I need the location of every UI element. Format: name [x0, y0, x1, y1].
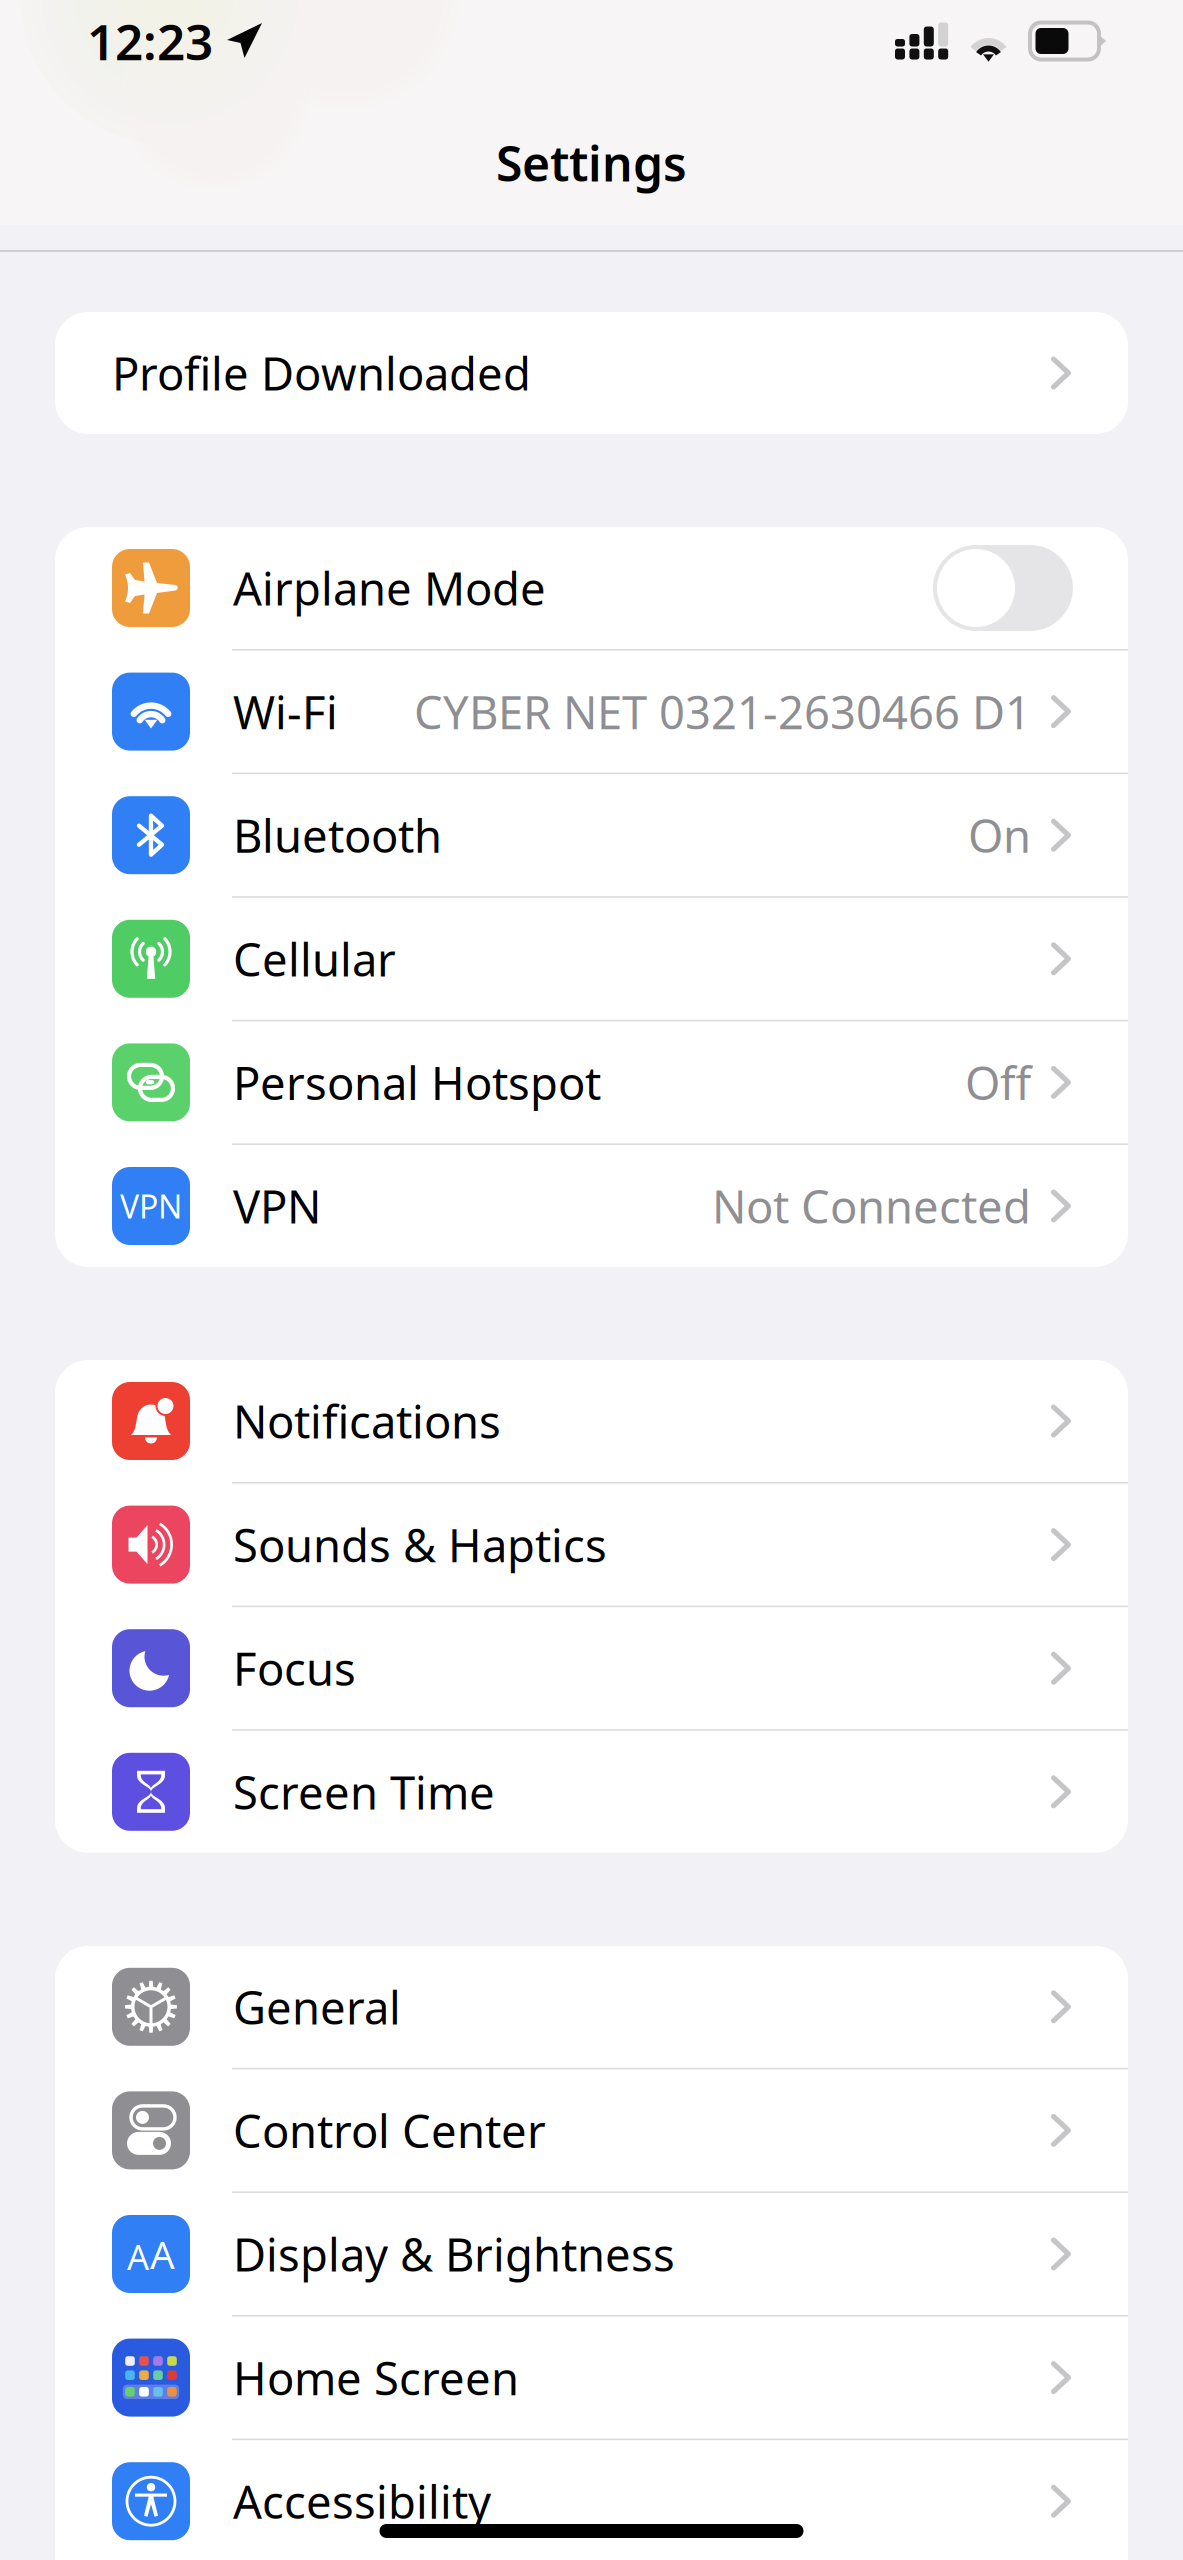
staticText: Bluetooth — [233, 805, 442, 865]
button[interactable]: Accessibility — [55, 2440, 1128, 2560]
staticText: Cellular — [233, 929, 396, 989]
button[interactable]: General — [55, 1946, 1128, 2068]
staticText: Settings — [496, 131, 687, 195]
staticText: Display & Brightness — [233, 2224, 675, 2284]
staticText: Wi-Fi — [233, 681, 338, 742]
staticText: Off — [965, 1052, 1031, 1112]
staticText: Airplane Mode — [233, 558, 546, 618]
staticText: Focus — [233, 1638, 356, 1698]
button[interactable]: Notifications — [55, 1360, 1128, 1482]
button[interactable]: Wi-Fi — [55, 651, 1128, 773]
staticText: Accessibility — [233, 2471, 491, 2531]
staticText: Home Screen — [233, 2347, 519, 2408]
button[interactable]: Cellular — [55, 898, 1128, 1020]
staticText: VPN — [233, 1176, 321, 1236]
button[interactable]: Bluetooth — [55, 774, 1128, 896]
staticText: 12:23 — [87, 8, 213, 74]
staticText: VPN — [120, 1185, 182, 1227]
button[interactable]: Focus — [55, 1607, 1128, 1729]
button[interactable]: VPN — [55, 1145, 1128, 1267]
staticText: Screen Time — [233, 1762, 495, 1822]
staticText: General — [233, 1977, 401, 2037]
staticText: CYBER NET 0321-2630466 D1 — [414, 681, 1031, 742]
staticText: Profile Downloaded — [112, 343, 531, 403]
staticText: Control Center — [233, 2100, 546, 2160]
button[interactable]: Screen Time — [55, 1731, 1128, 1853]
staticText: Sounds & Haptics — [233, 1514, 607, 1575]
staticText: On — [968, 805, 1031, 865]
button[interactable]: Home Screen — [55, 2317, 1128, 2439]
staticText: Personal Hotspot — [233, 1052, 601, 1112]
staticText: Not Connected — [712, 1176, 1031, 1236]
button[interactable]: Profile Downloaded — [55, 312, 1128, 434]
button[interactable]: Sounds & Haptics — [55, 1484, 1128, 1606]
staticText: A — [150, 2228, 175, 2280]
button[interactable]: Control Center — [55, 2069, 1128, 2191]
staticText: A — [127, 2234, 149, 2280]
button[interactable]: Personal Hotspot — [55, 1021, 1128, 1143]
button[interactable]: A — [55, 2193, 1128, 2315]
button[interactable]: Airplane Mode — [55, 527, 1128, 649]
staticText: Notifications — [233, 1391, 501, 1451]
